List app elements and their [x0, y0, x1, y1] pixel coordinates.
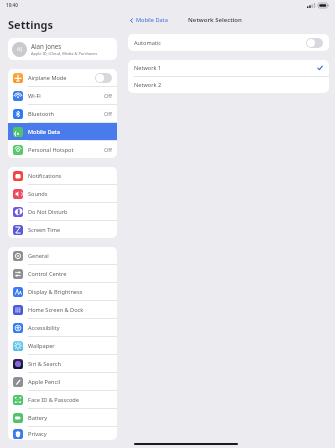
button[interactable]: Toggle [306, 38, 323, 48]
staticText: Wallpaper [28, 342, 112, 350]
staticText: Home Screen & Dock [28, 306, 112, 314]
staticText: Personal Hotspot [28, 146, 104, 154]
staticText: General [28, 252, 112, 260]
button[interactable]: Control Centre [8, 265, 117, 282]
button[interactable]: Wallpaper [8, 337, 117, 354]
staticText: Network Selection [188, 16, 242, 24]
button[interactable]: Mobile Data [128, 14, 169, 26]
staticText: Network 1 [134, 64, 317, 72]
button[interactable]: Do Not Disturb [8, 203, 117, 220]
button[interactable]: Mobile Data [8, 123, 117, 140]
staticText: Control Centre [28, 270, 112, 278]
button[interactable]: Airplane Mode [8, 69, 117, 86]
button[interactable]: Bluetooth [8, 105, 117, 122]
button[interactable]: Siri & Search [8, 355, 117, 372]
button[interactable]: Personal Hotspot [8, 141, 117, 158]
button[interactable]: Toggle [95, 73, 112, 83]
button[interactable]: Screen Time [8, 221, 117, 238]
button[interactable]: Battery [8, 409, 117, 426]
button[interactable]: Display & Brightness [8, 283, 117, 300]
staticText: AJ [17, 46, 22, 53]
staticText: Automatic [134, 39, 306, 47]
button[interactable]: Home Screen & Dock [8, 301, 117, 318]
staticText: Apple ID, iCloud, Media & Purchases [31, 51, 98, 56]
staticText: Mobile Data [28, 128, 112, 136]
staticText: Do Not Disturb [28, 208, 112, 216]
staticText: Accessibility [28, 324, 112, 332]
button[interactable]: Face ID & Passcode [8, 391, 117, 408]
staticText: Face ID & Passcode [28, 396, 112, 404]
button[interactable]: Privacy [8, 427, 117, 440]
staticText: Sounds [28, 190, 112, 198]
button[interactable]: Accessibility [8, 319, 117, 336]
button[interactable]: Sounds [8, 185, 117, 202]
button[interactable]: Wi-Fi [8, 87, 117, 104]
button[interactable]: Notifications [8, 167, 117, 184]
button[interactable]: Automatic [128, 34, 329, 51]
staticText: Off [104, 92, 112, 99]
button[interactable]: Apple Pencil [8, 373, 117, 390]
staticText: Display & Brightness [28, 288, 112, 296]
staticText: Screen Time [28, 226, 112, 234]
staticText: Privacy [28, 430, 112, 438]
staticText: Bluetooth [28, 110, 104, 118]
button[interactable]: Network 1 [128, 60, 329, 76]
staticText: Battery [28, 414, 112, 422]
staticText: Apple Pencil [28, 378, 112, 386]
staticText: Airplane Mode [28, 74, 95, 82]
staticText: Network 2 [134, 81, 323, 89]
staticText: Alan Jones [31, 42, 62, 50]
staticText: Wi-Fi [28, 92, 104, 100]
staticText: Siri & Search [28, 360, 112, 368]
button[interactable]: Network 2 [128, 77, 329, 93]
staticText: Notifications [28, 172, 112, 180]
staticText: Off [104, 146, 112, 153]
staticText: Mobile Data [136, 16, 168, 24]
staticText: 10:40 [6, 2, 18, 8]
button[interactable]: AJ [8, 38, 117, 60]
button[interactable]: General [8, 247, 117, 264]
staticText: Settings [8, 17, 54, 32]
staticText: Off [104, 110, 112, 117]
